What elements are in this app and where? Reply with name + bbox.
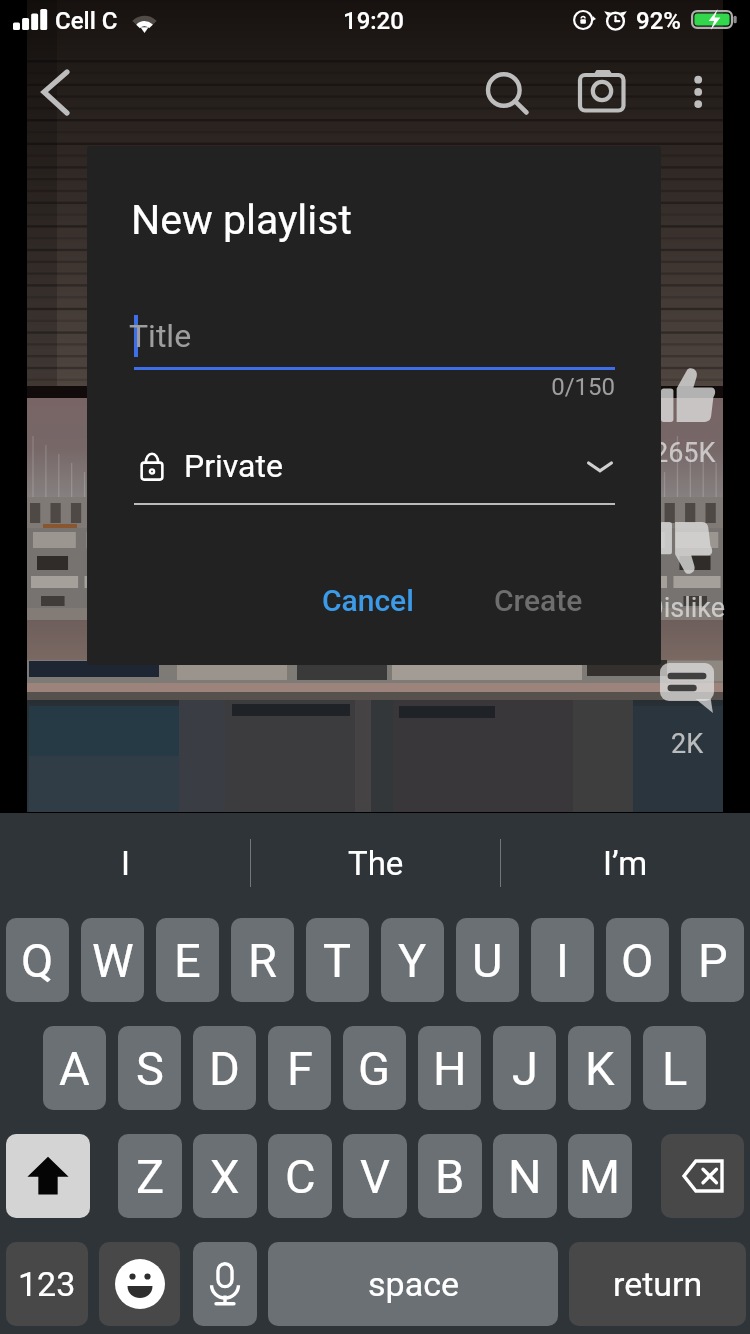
button[interactable]: Backspace <box>661 1134 744 1218</box>
button[interactable]: K <box>568 1026 631 1110</box>
staticText: return <box>613 1264 703 1304</box>
button[interactable]: A <box>43 1026 106 1110</box>
button[interactable]: F <box>268 1026 331 1110</box>
button[interactable]: V <box>343 1134 407 1218</box>
staticText: Dislike <box>646 592 726 624</box>
button[interactable]: L <box>643 1026 706 1110</box>
button[interactable]: G <box>343 1026 406 1110</box>
button[interactable]: I <box>0 813 250 913</box>
staticText: W <box>92 933 134 988</box>
button[interactable]: More options <box>678 62 718 122</box>
staticText: Z <box>136 1149 165 1204</box>
button[interactable]: Q <box>6 918 69 1002</box>
staticText: B <box>435 1149 465 1204</box>
staticText: 2K <box>671 728 704 760</box>
staticText: The <box>348 844 404 883</box>
staticText: F <box>287 1041 313 1096</box>
button[interactable]: 123 <box>6 1242 88 1326</box>
staticText: M <box>579 1149 621 1204</box>
staticText: K <box>585 1041 615 1096</box>
staticText: T <box>323 933 352 988</box>
button[interactable]: R <box>231 918 294 1002</box>
staticText: N <box>508 1149 542 1204</box>
button[interactable]: Like <box>661 368 715 422</box>
staticText: Y <box>398 933 427 988</box>
button[interactable]: N <box>493 1134 557 1218</box>
staticText: 19:20 <box>343 7 404 35</box>
staticText: I’m <box>603 844 648 883</box>
staticText: R <box>248 933 277 988</box>
staticText: Title <box>129 317 192 355</box>
button[interactable]: Create <box>480 568 597 632</box>
staticText: I <box>121 844 130 883</box>
button[interactable]: Voice input <box>193 1242 257 1326</box>
staticText: Q <box>21 933 54 988</box>
staticText: 0/150 <box>417 373 615 401</box>
staticText: X <box>210 1149 240 1204</box>
button[interactable]: T <box>306 918 369 1002</box>
staticText: E <box>174 933 201 988</box>
staticText: O <box>621 933 654 988</box>
staticText: 92% <box>636 7 681 35</box>
button[interactable]: Z <box>118 1134 182 1218</box>
staticText: P <box>698 933 728 988</box>
staticText: G <box>358 1041 391 1096</box>
button[interactable]: Search <box>476 62 536 122</box>
staticText: A <box>59 1041 90 1096</box>
staticText: S <box>136 1041 164 1096</box>
button[interactable]: D <box>193 1026 256 1110</box>
button[interactable]: J <box>493 1026 556 1110</box>
button[interactable]: Shift <box>6 1134 90 1218</box>
staticText: Cancel <box>322 583 414 618</box>
button[interactable]: O <box>606 918 669 1002</box>
staticText: Private <box>184 447 283 485</box>
button[interactable]: Emoji <box>99 1242 180 1326</box>
button[interactable]: M <box>568 1134 632 1218</box>
staticText: space <box>368 1264 459 1304</box>
staticText: New playlist <box>131 196 352 244</box>
button[interactable]: E <box>156 918 219 1002</box>
button[interactable]: I <box>531 918 594 1002</box>
staticText: U <box>472 933 503 988</box>
button[interactable]: H <box>418 1026 481 1110</box>
button[interactable]: Private <box>134 436 615 496</box>
button[interactable]: W <box>81 918 144 1002</box>
button[interactable]: return <box>569 1242 746 1326</box>
staticText: H <box>433 1041 467 1096</box>
button[interactable]: S <box>118 1026 181 1110</box>
staticText: Cell C <box>55 7 118 35</box>
staticText: Create <box>494 583 583 618</box>
button[interactable]: Dislike <box>660 522 712 574</box>
staticText: C <box>285 1149 316 1204</box>
staticText: I <box>556 933 569 988</box>
staticText: D <box>209 1041 240 1096</box>
button[interactable]: P <box>681 918 744 1002</box>
staticText: L <box>662 1041 688 1096</box>
button[interactable]: Back <box>26 62 86 122</box>
staticText: J <box>512 1041 538 1096</box>
button[interactable]: I’m <box>501 813 750 913</box>
button[interactable]: Comments <box>660 663 714 713</box>
staticText: V <box>360 1149 390 1204</box>
button[interactable]: X <box>193 1134 257 1218</box>
button[interactable]: C <box>268 1134 332 1218</box>
button[interactable]: Cancel <box>308 568 428 632</box>
button[interactable]: space <box>268 1242 558 1326</box>
staticText: 265K <box>653 437 716 469</box>
button[interactable]: The <box>251 813 500 913</box>
button[interactable]: U <box>456 918 519 1002</box>
button[interactable]: Y <box>381 918 444 1002</box>
button[interactable]: Camera <box>572 62 632 122</box>
button[interactable]: B <box>418 1134 482 1218</box>
staticText: 123 <box>18 1264 76 1304</box>
